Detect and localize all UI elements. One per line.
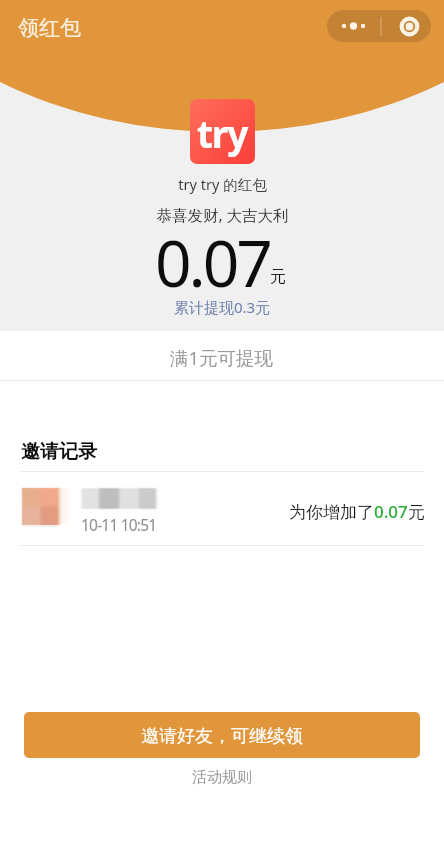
staticText: 邀请记录 [21,440,97,464]
staticText: try try 的红包 [178,174,267,194]
staticText: 为你增加了0.07元 [289,500,425,523]
button[interactable]: 邀请好友，可继续领 [24,712,420,758]
staticText: 满1元可提现 [170,345,274,370]
staticText: 10-11 10:51 [81,514,157,535]
staticText: 邀请好友，可继续领 [141,725,303,748]
button[interactable]: 活动规则 [182,764,262,791]
button[interactable]: Close mini program [381,10,431,42]
staticText: 0.07 [155,219,270,306]
staticText: try [197,108,248,158]
button[interactable]: 累计提现0.3元 [168,295,277,319]
staticText: 元 [270,267,286,287]
button[interactable]: 10-11 10:51 [0,472,444,545]
staticText: 恭喜发财, 大吉大利 [156,204,289,225]
button[interactable]: More options [327,10,380,42]
staticText: 领红包 [18,15,81,41]
